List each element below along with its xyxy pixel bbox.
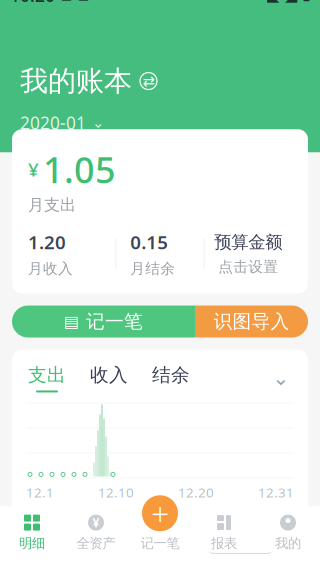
button[interactable]: 结余 (128, 363, 190, 392)
button[interactable]: 切换账本 (140, 73, 157, 90)
staticText: 月收入 (28, 259, 73, 277)
button[interactable]: 支出 (28, 363, 66, 392)
button[interactable]: ▤ (12, 305, 195, 337)
staticText: 收入 (90, 363, 128, 386)
staticText: 我的账本 (20, 64, 132, 98)
staticText: 12.1 (26, 483, 54, 501)
staticText: 点击设置 (218, 258, 278, 276)
staticText: ⌄ (272, 367, 289, 389)
staticText: ¥ (92, 515, 99, 530)
staticText: 12.20 (178, 483, 214, 501)
staticText: 支出 (28, 363, 66, 386)
button[interactable]: 按时间 (209, 529, 272, 553)
staticText: ⇄ (142, 73, 154, 89)
staticText: 记一笔 (86, 310, 143, 333)
staticText: 12.10 (98, 483, 134, 501)
button[interactable]: 展开 (270, 369, 292, 387)
staticText: 0.15 (130, 230, 168, 254)
staticText: 我的 (275, 535, 301, 551)
staticText: 结余 (152, 363, 190, 386)
button[interactable]: 预算金额 (205, 231, 292, 276)
staticText: ⌄ (92, 114, 104, 131)
button[interactable]: 列表视图 (272, 531, 306, 551)
staticText: 1.05 (43, 145, 116, 193)
staticText: 记一笔 (140, 535, 179, 551)
staticText: 账单明细 (14, 529, 94, 554)
staticText: ▤ (64, 312, 79, 331)
staticText: ¥ (28, 157, 39, 182)
button[interactable]: 报表 (192, 514, 256, 551)
staticText: 明细 (19, 535, 45, 551)
staticText: ◢ (285, 0, 297, 4)
staticText: 全资产 (76, 535, 115, 551)
staticText: 识图导入 (213, 310, 289, 333)
button[interactable]: ¥ (64, 514, 128, 551)
staticText: 1.20 (28, 230, 66, 254)
button[interactable]: 2020-01 (0, 98, 320, 152)
button[interactable]: 收入 (66, 363, 128, 392)
staticText: 12.31 (258, 483, 294, 501)
button[interactable]: 明细 (0, 514, 64, 551)
button[interactable]: 我的 (256, 514, 320, 551)
staticText: + (151, 492, 169, 534)
staticText: 10:20 (10, 0, 55, 7)
staticText: 月支出 (28, 195, 76, 215)
staticText: 按时间 (218, 532, 263, 550)
staticText: 报表 (211, 535, 237, 551)
button[interactable]: 记一笔 (138, 491, 182, 535)
button[interactable]: 识图导入 (195, 305, 308, 337)
staticText: 月结余 (130, 259, 175, 277)
staticText: 预算金额 (214, 231, 282, 253)
staticText: 2020-01 (20, 111, 86, 134)
staticText: ◣ (267, 0, 279, 4)
